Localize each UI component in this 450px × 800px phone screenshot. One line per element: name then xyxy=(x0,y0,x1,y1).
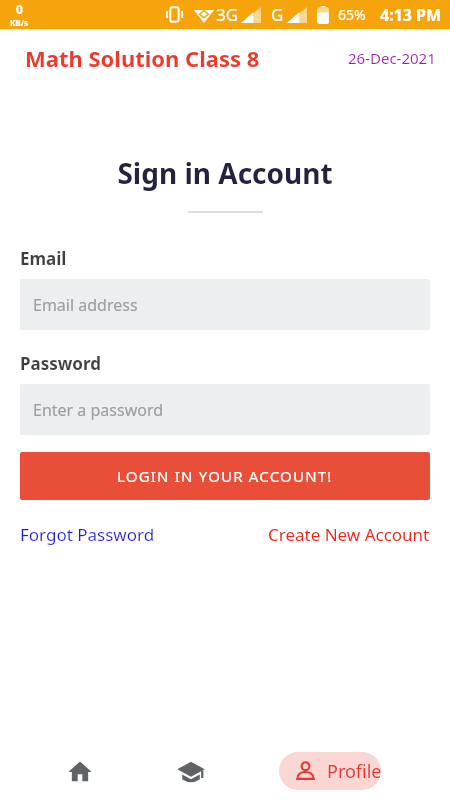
staticText: 26-Dec-2021 xyxy=(348,48,436,68)
staticText: 65% xyxy=(338,5,366,24)
button[interactable]: Create New Account xyxy=(268,523,430,546)
staticText: 4:13 PM xyxy=(380,4,442,26)
button[interactable]: Enter a password xyxy=(20,384,430,435)
staticText: 0 xyxy=(16,1,23,17)
staticText: G xyxy=(271,3,284,26)
button[interactable]: Email address xyxy=(20,279,430,330)
button[interactable] xyxy=(66,758,94,786)
staticText: Email xyxy=(20,247,67,270)
staticText: Email address xyxy=(33,294,138,316)
button[interactable] xyxy=(176,758,206,788)
staticText: Password xyxy=(20,352,101,375)
staticText: Math Solution Class 8 xyxy=(25,43,260,73)
button[interactable]: Forgot Password xyxy=(20,523,155,546)
staticText: Enter a password xyxy=(33,399,164,421)
staticText: Profile xyxy=(327,759,381,784)
staticText: KB/s xyxy=(10,17,28,28)
staticText: 3G xyxy=(216,3,239,26)
button[interactable]: LOGIN IN YOUR ACCOUNT! xyxy=(20,452,430,500)
staticText: Sign in Account xyxy=(0,154,450,192)
staticText: LOGIN IN YOUR ACCOUNT! xyxy=(117,466,333,486)
button[interactable]: Profile xyxy=(279,752,381,790)
